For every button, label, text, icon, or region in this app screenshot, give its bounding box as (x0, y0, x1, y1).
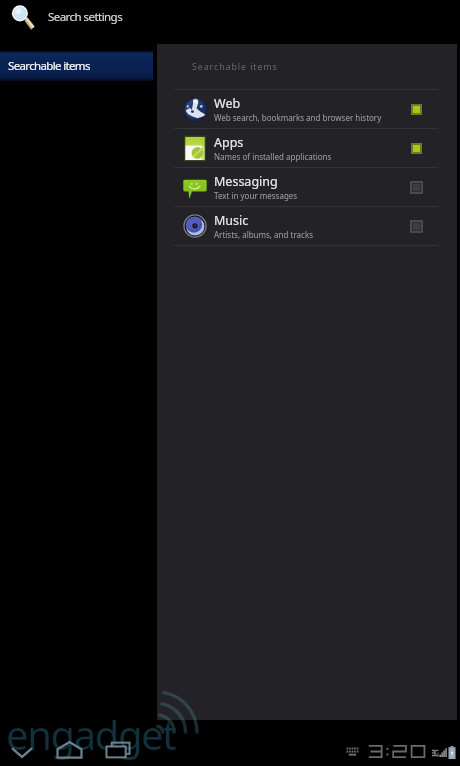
button[interactable]: Mobile signal (432, 748, 447, 757)
button[interactable]: Recent apps (106, 742, 130, 758)
button[interactable]: Battery charging (448, 746, 456, 759)
staticText: Text in your messages (214, 190, 298, 201)
staticText: Searchable items (192, 60, 278, 72)
staticText: Music (214, 212, 249, 229)
staticText: Searchable items (8, 58, 90, 74)
staticText: Web search, bookmarks and browser histor… (214, 112, 382, 123)
button[interactable]: Home (57, 741, 82, 759)
button[interactable]: Music (157, 207, 457, 245)
button[interactable]: Apps (157, 129, 457, 167)
staticText: Artists, albums, and tracks (214, 229, 313, 240)
staticText: Messaging (214, 173, 278, 190)
button[interactable]: Keyboard (346, 747, 359, 756)
staticText: engadget (6, 707, 176, 761)
staticText: Apps (214, 134, 244, 151)
button[interactable]: Clock 3:20 (368, 745, 430, 758)
staticText: Web (214, 95, 241, 112)
button[interactable]: Messaging (157, 168, 457, 206)
button[interactable]: Web (157, 90, 457, 128)
button[interactable]: Back (11, 746, 33, 760)
staticText: Names of installed applications (214, 151, 332, 162)
button[interactable]: Searchable items (0, 51, 153, 81)
staticText: Search settings (48, 9, 123, 25)
